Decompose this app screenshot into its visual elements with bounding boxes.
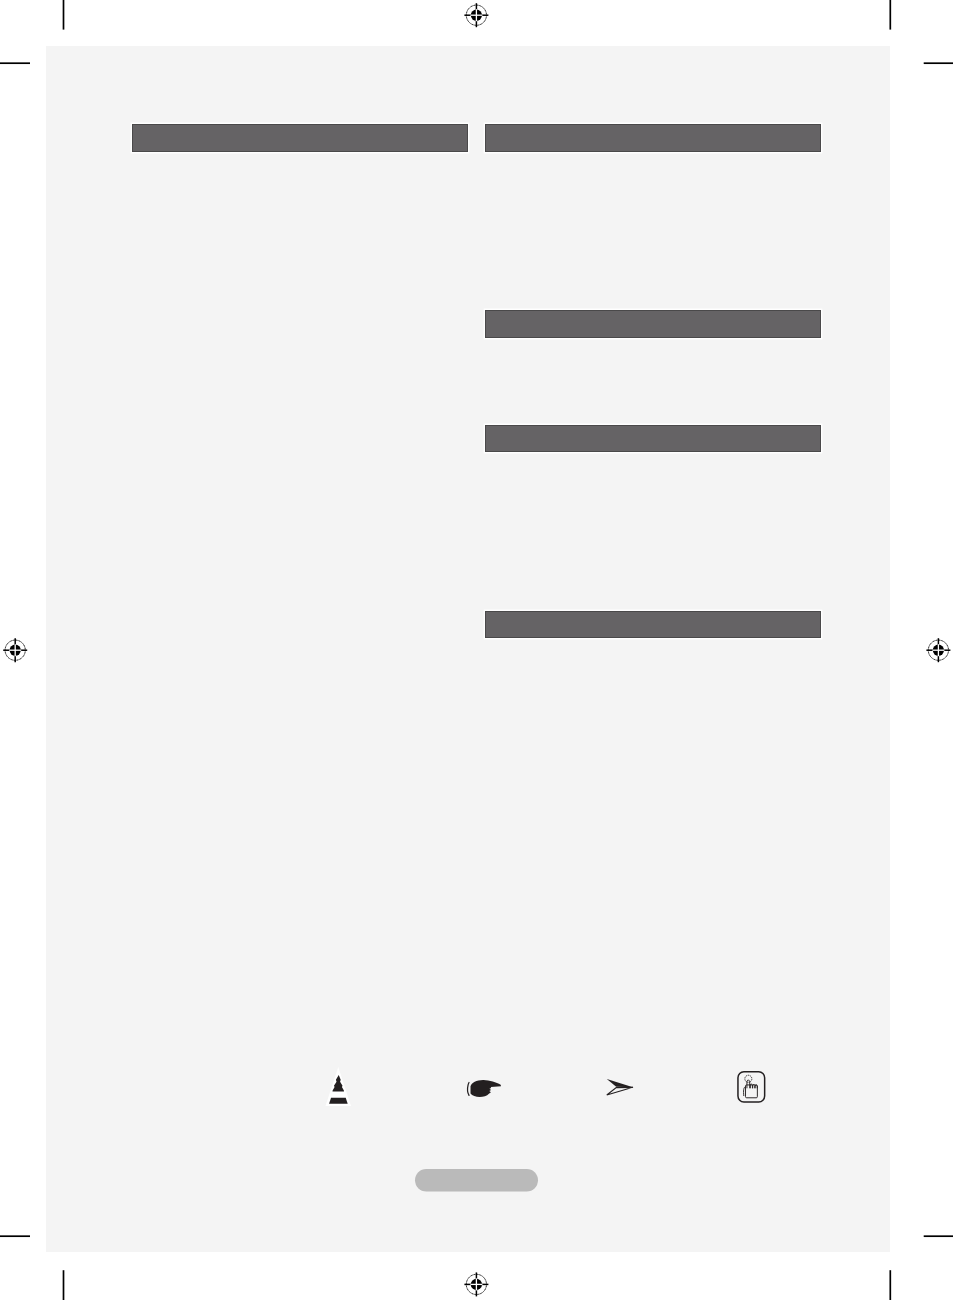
button[interactable]: Tree <box>322 1060 358 1110</box>
button[interactable]: Tap gesture <box>734 1068 769 1106</box>
button[interactable]: Home indicator <box>413 1167 540 1194</box>
button[interactable]: Send <box>602 1073 638 1101</box>
button[interactable]: Pointing hand <box>462 1074 506 1104</box>
